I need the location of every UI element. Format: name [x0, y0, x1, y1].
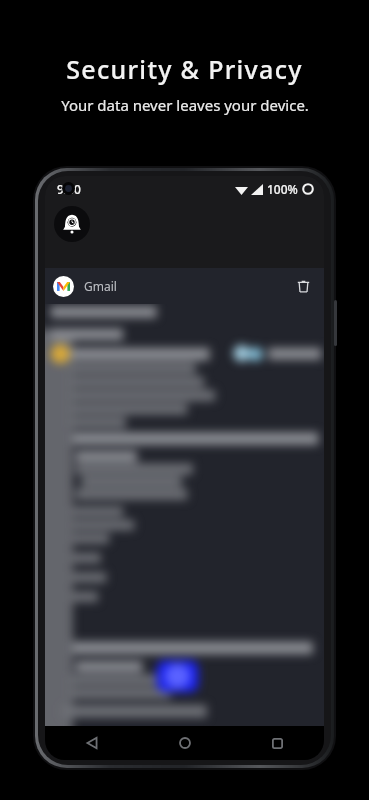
button[interactable] [45, 304, 324, 726]
button[interactable]: Recent apps [231, 726, 324, 760]
staticText: Your data never leaves your device. [61, 95, 309, 115]
button[interactable]: Back [45, 726, 138, 760]
button[interactable]: Delete notification [292, 275, 314, 297]
button[interactable]: Gmail [45, 268, 324, 304]
staticText: Security & Privacy [66, 52, 303, 86]
button[interactable]: Snoozed notification [54, 206, 90, 242]
staticText: 9:00 [57, 181, 81, 197]
staticText: 100% [267, 181, 298, 197]
button[interactable]: Home [138, 726, 231, 760]
staticText: Gmail [84, 278, 117, 294]
